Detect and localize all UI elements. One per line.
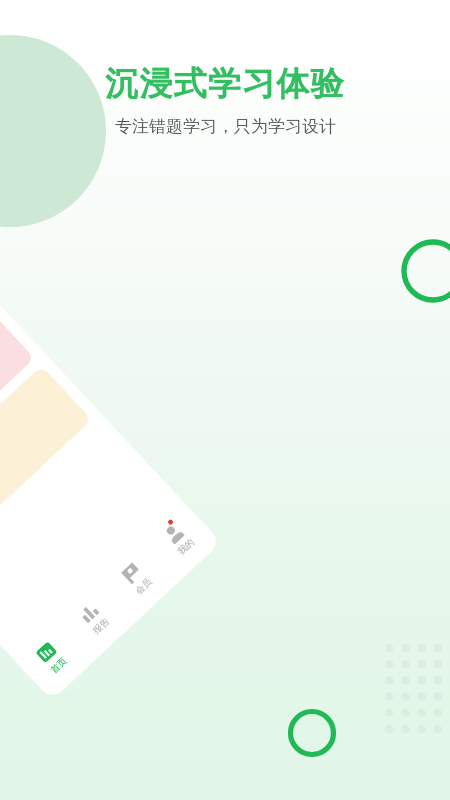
- staticText: 沉浸式学习体验: [105, 63, 345, 105]
- staticText: 我的: [175, 536, 196, 556]
- button[interactable]: 外语词典: [0, 223, 221, 701]
- button[interactable]: 首页: [12, 619, 90, 696]
- button[interactable]: 报告: [55, 579, 133, 657]
- button[interactable]: [0, 365, 92, 563]
- staticText: 会员: [133, 576, 154, 596]
- staticText: 专注错题学习，只为学习设计: [115, 116, 336, 137]
- button[interactable]: 我的: [139, 500, 217, 577]
- staticText: 首页: [48, 655, 69, 675]
- staticText: 报告: [90, 615, 111, 636]
- button[interactable]: 外语词典: [0, 304, 35, 501]
- button[interactable]: 会员: [97, 539, 175, 617]
